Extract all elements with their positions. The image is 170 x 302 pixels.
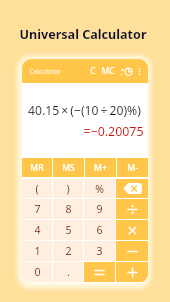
staticText: 9 <box>96 202 103 216</box>
button[interactable]: MS <box>53 158 84 177</box>
button[interactable]: 1 <box>22 241 52 261</box>
button[interactable]: ( <box>22 179 52 198</box>
button[interactable]: 7 <box>22 199 52 219</box>
button[interactable]: ) <box>53 179 83 198</box>
button[interactable]: M+ <box>85 158 116 177</box>
staticText: 2 <box>65 244 72 258</box>
staticText: 8 <box>65 202 72 216</box>
button[interactable]: % <box>84 179 115 198</box>
staticText: Calculator <box>29 67 61 76</box>
staticText: % <box>95 182 104 196</box>
button[interactable]: Equals <box>84 262 115 282</box>
staticText: =−0.20075 <box>83 123 144 140</box>
staticText: MR <box>30 162 44 174</box>
button[interactable]: 8 <box>53 199 83 219</box>
staticText: 40.15 × (−(10 ÷ 20)%) <box>28 102 141 119</box>
button[interactable]: 2 <box>53 241 83 261</box>
button[interactable]: Backspace <box>116 179 148 198</box>
staticText: MS <box>62 162 75 174</box>
staticText: 4 <box>34 223 41 237</box>
staticText: ) <box>66 182 70 196</box>
button[interactable]: C <box>88 62 98 80</box>
button[interactable]: MC <box>99 62 117 80</box>
staticText: 7 <box>34 202 41 216</box>
other: Equals <box>93 266 106 279</box>
button[interactable]: More options <box>134 66 145 77</box>
button[interactable]: Divide <box>116 199 148 219</box>
staticText: . <box>67 265 70 279</box>
button[interactable]: 0 <box>22 262 52 282</box>
staticText: 0 <box>34 265 41 279</box>
other: Multiply <box>126 224 139 237</box>
button[interactable]: Plus <box>116 262 148 282</box>
staticText: 3 <box>96 244 103 258</box>
other: Minus <box>126 245 139 258</box>
staticText: 5 <box>65 223 72 237</box>
button[interactable]: 6 <box>84 220 115 240</box>
staticText: C <box>90 65 96 77</box>
other: Backspace <box>123 183 142 194</box>
staticText: M+ <box>94 162 107 174</box>
button[interactable]: 4 <box>22 220 52 240</box>
staticText: 6 <box>96 223 103 237</box>
button[interactable]: History <box>119 64 134 79</box>
staticText: Universal Calculator <box>19 26 147 43</box>
button[interactable]: 5 <box>53 220 83 240</box>
staticText: ( <box>35 182 39 196</box>
other: Divide <box>126 203 139 216</box>
button[interactable]: M- <box>117 158 148 177</box>
button[interactable]: Multiply <box>116 220 148 240</box>
button[interactable]: 9 <box>84 199 115 219</box>
staticText: 1 <box>34 244 41 258</box>
other: Plus <box>126 266 139 279</box>
button[interactable]: . <box>53 262 83 282</box>
button[interactable]: Minus <box>116 241 148 261</box>
button[interactable]: 3 <box>84 241 115 261</box>
staticText: M- <box>127 162 138 174</box>
button[interactable]: MR <box>22 158 52 177</box>
staticText: MC <box>101 65 115 77</box>
